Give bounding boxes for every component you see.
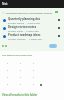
staticText: SHOWING RESULTS FOR RECENT NOTES	[6, 11, 53, 14]
button[interactable]: Design review notes	[0, 24, 64, 32]
button[interactable]: Menu	[2, 2, 8, 6]
staticText: Project Delta · 5 days ago	[8, 29, 39, 32]
staticText: View all results in this folder	[2, 93, 38, 96]
staticText: ALL RESULTS IN THIS LIST	[2, 53, 33, 56]
button[interactable]: Quarterly planning doc	[0, 16, 64, 24]
staticText: Design review notes	[8, 25, 37, 29]
staticText: Product roadmap ideas	[8, 33, 41, 37]
staticText: Project Sigma · 2 days ago	[8, 21, 40, 24]
button[interactable]: Product roadmap ideas	[0, 32, 64, 40]
button[interactable]	[49, 44, 57, 48]
staticText: Project Omega · 1 week ago	[8, 37, 43, 40]
button[interactable]: View all results in this folder	[2, 93, 38, 96]
button[interactable]: SHOWING RESULTS FOR RECENT NOTES	[0, 8, 64, 16]
staticText: Quarterly planning doc	[8, 17, 41, 21]
staticText: Notes	[2, 2, 8, 6]
